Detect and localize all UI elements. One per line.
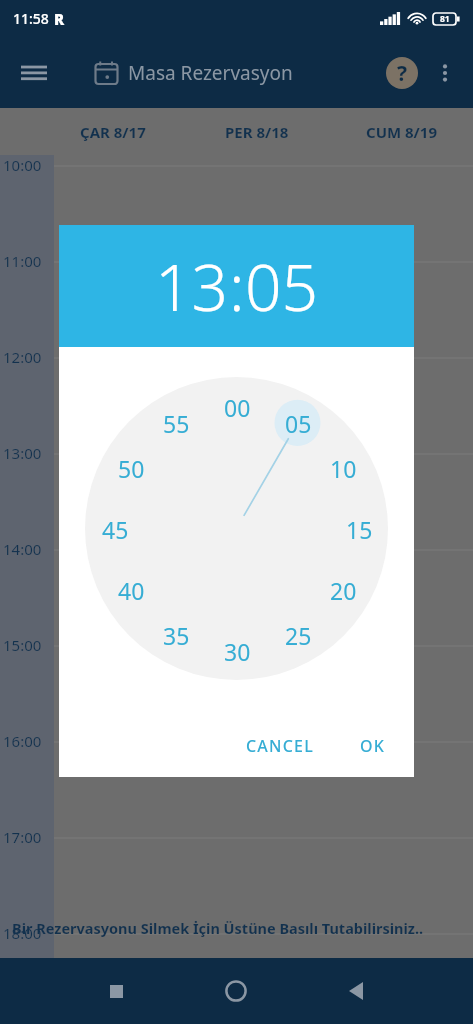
staticText: Masa Rezervasyon [128, 60, 293, 86]
staticText: CUM 8/19 [366, 122, 437, 142]
staticText: 16:00 [3, 731, 42, 751]
staticText: : [229, 243, 245, 330]
staticText: 05 [285, 408, 312, 439]
staticText: 25 [285, 620, 312, 651]
button[interactable]: 10 [322, 447, 364, 489]
staticText: 17:00 [3, 827, 42, 847]
staticText: 10 [330, 453, 357, 484]
staticText: ? [397, 59, 408, 88]
staticText: 20 [330, 575, 357, 606]
staticText: 50 [118, 453, 145, 484]
staticText: 05 [245, 243, 319, 330]
button[interactable]: 45 [94, 508, 136, 550]
staticText: 14:00 [3, 539, 42, 559]
staticText: CANCEL [246, 735, 314, 757]
staticText: 15 [346, 514, 373, 545]
staticText: 35 [163, 620, 190, 651]
staticText: Bir Rezervasyonu Silmek İçin Üstüne Bası… [12, 918, 424, 938]
staticText: R [54, 9, 65, 29]
button[interactable]: 13 [155, 243, 229, 330]
button[interactable]: 25 [277, 614, 319, 656]
button[interactable] [59, 231, 359, 363]
staticText: 30 [224, 636, 251, 667]
staticText: 11:00 [3, 251, 42, 271]
button[interactable]: Open navigation menu [12, 51, 56, 95]
staticText: 13:00 [3, 443, 42, 463]
button[interactable]: CUM 8/19 [329, 108, 473, 155]
staticText: ÇAR 8/17 [80, 122, 146, 142]
button[interactable]: Recent apps [92, 967, 140, 1015]
staticText: 15:00 [3, 635, 42, 655]
button[interactable]: CANCEL [234, 725, 326, 767]
staticText: 10:00 [3, 155, 42, 175]
staticText: 45 [102, 514, 129, 545]
button[interactable]: 50 [110, 447, 152, 489]
staticText: 12:00 [3, 347, 42, 367]
staticText: PER 8/18 [225, 122, 289, 142]
button[interactable]: 30 [216, 630, 258, 672]
button[interactable]: Help [381, 52, 423, 94]
staticText: 00 [224, 392, 251, 423]
staticText: 40 [118, 575, 145, 606]
staticText: 13 [155, 243, 229, 330]
button[interactable]: 05 [245, 243, 319, 330]
button[interactable]: 05 [277, 402, 319, 444]
button[interactable]: Home [212, 967, 260, 1015]
button[interactable]: 00 [216, 386, 258, 428]
button[interactable]: 40 [110, 569, 152, 611]
staticText: 11:58 [13, 9, 49, 28]
button[interactable]: ÇAR 8/17 [40, 108, 185, 155]
button[interactable]: 15 [338, 508, 380, 550]
button[interactable]: Back [332, 967, 380, 1015]
staticText: 55 [163, 408, 190, 439]
staticText: OK [360, 735, 386, 757]
staticText: 81 [440, 13, 450, 25]
button[interactable]: 35 [155, 614, 197, 656]
button[interactable]: PER 8/18 [185, 108, 329, 155]
staticText: 18:00 [3, 923, 42, 943]
button[interactable]: 55 [155, 402, 197, 444]
button[interactable]: OK [348, 725, 398, 767]
button[interactable]: More options [427, 55, 463, 91]
button[interactable]: 20 [322, 569, 364, 611]
